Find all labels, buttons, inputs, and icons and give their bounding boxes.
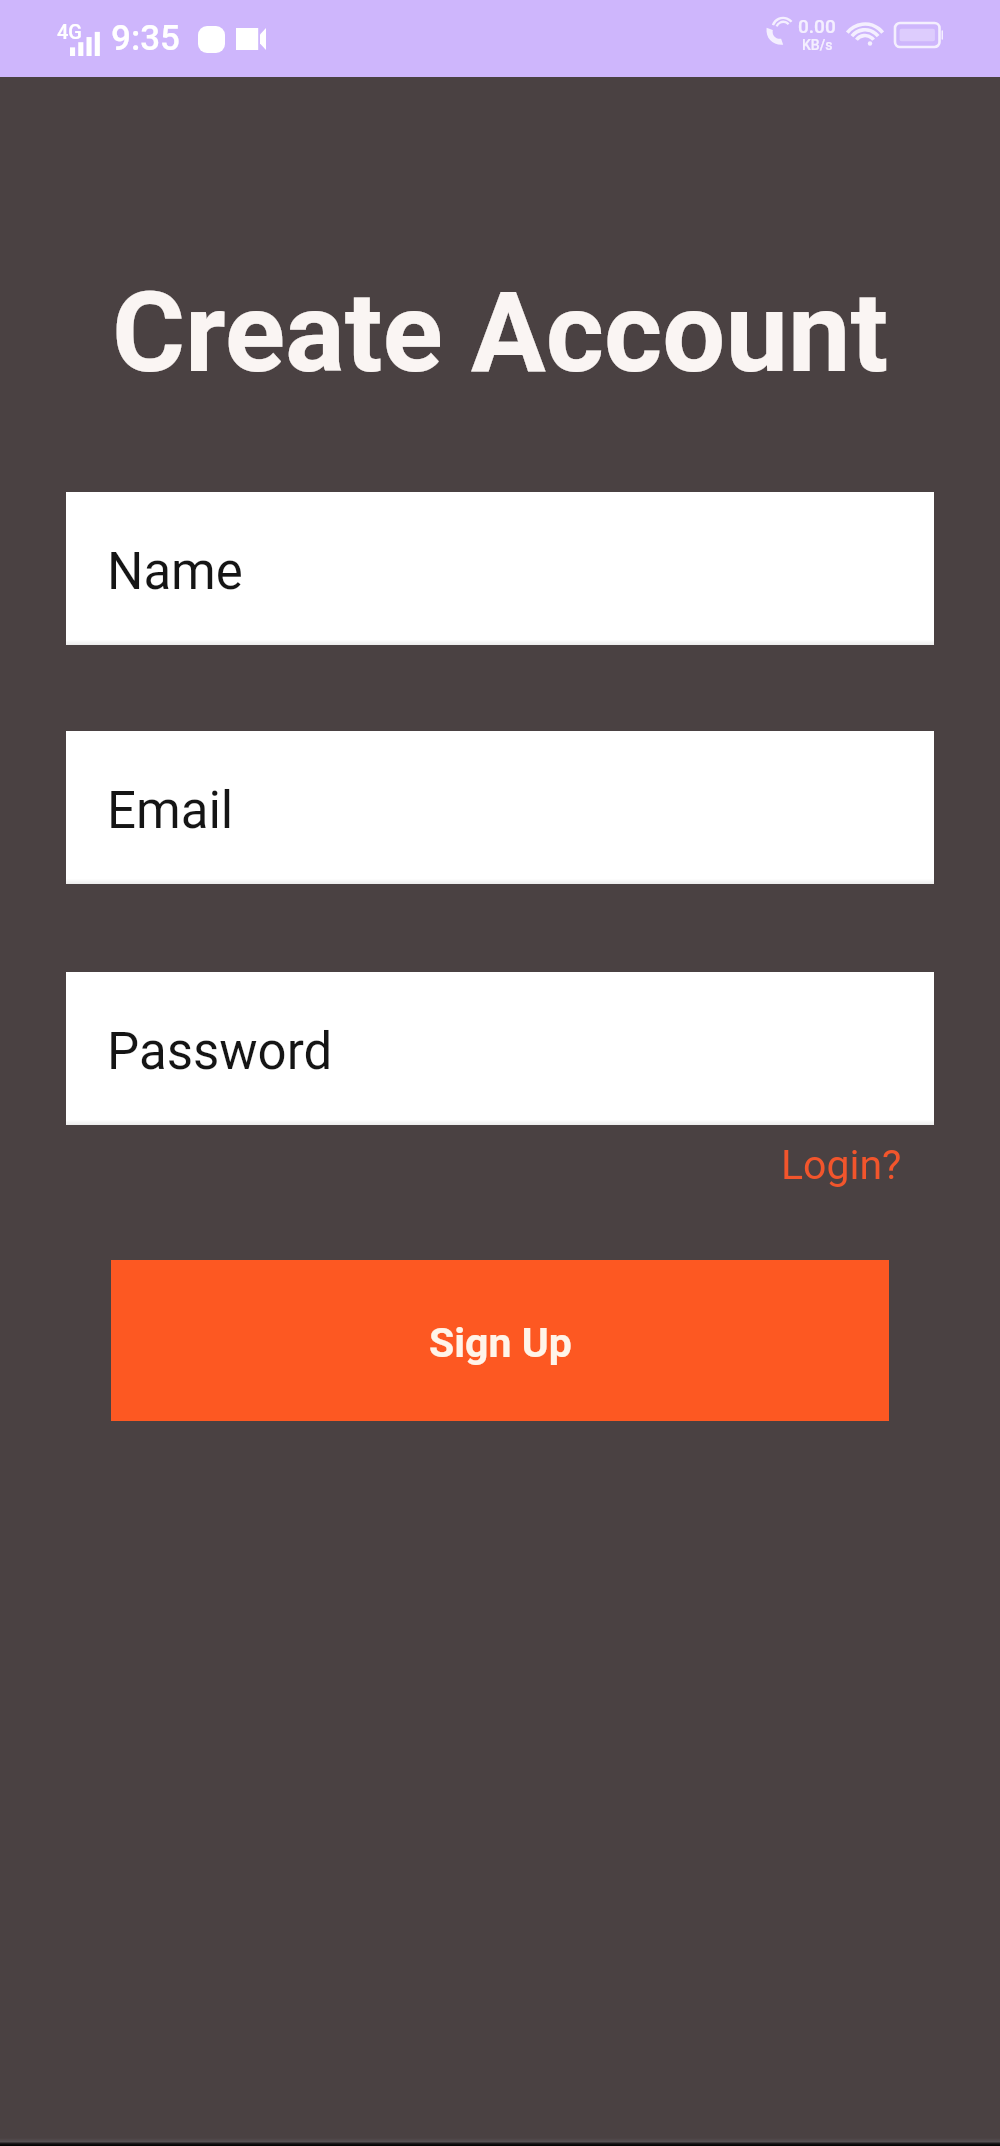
- staticText: Login?: [781, 1141, 902, 1189]
- button[interactable]: Login?: [773, 1133, 910, 1197]
- staticText: Email: [107, 781, 234, 841]
- other: Screen recording: [236, 28, 266, 50]
- staticText: 4G: [57, 20, 82, 43]
- staticText: Create Account: [0, 267, 1000, 398]
- other: Battery: [894, 22, 944, 48]
- staticText: Name: [107, 542, 243, 602]
- staticText: KB/s: [802, 37, 833, 53]
- staticText: 9:35: [111, 18, 180, 59]
- other: Wi-Fi calling: [765, 20, 791, 46]
- button[interactable]: Name: [66, 492, 934, 645]
- staticText: Sign Up: [429, 1319, 572, 1367]
- button[interactable]: Sign Up: [111, 1260, 889, 1421]
- other: Wi-Fi: [848, 22, 882, 48]
- staticText: Password: [107, 1022, 333, 1082]
- button[interactable]: Password: [66, 972, 934, 1125]
- other: Mobile signal strength: [70, 32, 103, 56]
- other: Notification: [198, 26, 225, 53]
- button[interactable]: Email: [66, 731, 934, 884]
- staticText: 0.00: [798, 15, 836, 37]
